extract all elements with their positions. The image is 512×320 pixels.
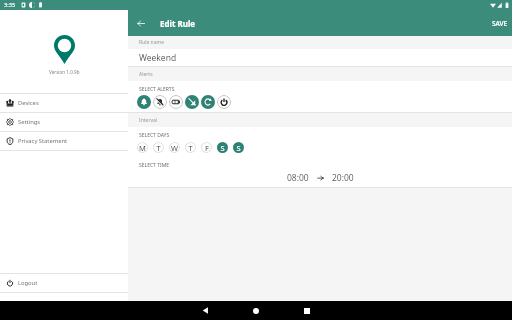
button[interactable]: Battery alert [169,95,183,109]
button[interactable]: Weekend [128,49,512,66]
staticText: S [236,143,241,153]
staticText: Privacy Statement [18,137,68,145]
staticText: 3:35 [4,1,16,9]
button[interactable]: Devices [0,94,128,112]
button[interactable]: Back [128,10,154,36]
button[interactable]: 08:00 [279,170,317,186]
staticText: W [171,143,178,153]
staticText: 08:00 [287,172,309,184]
staticText: M [139,143,146,153]
button[interactable]: Power alert [217,95,231,109]
button[interactable]: Connection alert [185,95,199,109]
button[interactable]: Home [241,301,271,320]
staticText: S [220,143,225,153]
staticText: F [205,143,209,153]
button[interactable]: Notification alert [137,95,151,109]
button[interactable]: SAVE [486,10,512,36]
staticText: Weekend [139,52,177,64]
staticText: T [156,143,161,153]
button[interactable]: 20:00 [324,170,362,186]
staticText: SELECT TIME [139,162,169,169]
staticText: Alerts [139,71,153,78]
button[interactable]: Vibration alert [153,95,167,109]
button[interactable]: M [137,142,148,153]
button[interactable]: S [217,142,228,153]
button[interactable]: Back [190,301,220,320]
button[interactable]: Recents [292,301,322,320]
staticText: Interval [139,117,158,124]
button[interactable]: T [185,142,196,153]
staticText: 20:00 [332,172,354,184]
staticText: SELECT ALERTS [139,86,175,93]
staticText: Edit Rule [160,18,196,29]
button[interactable]: S [233,142,244,153]
staticText: SELECT DAYS [139,132,170,139]
staticText: Logout [18,279,38,287]
button[interactable]: Settings [0,113,128,131]
button[interactable]: Sync alert [201,95,215,109]
button[interactable]: W [169,142,180,153]
staticText: SAVE [492,19,508,28]
staticText: Rule name [139,39,165,46]
staticText: Version 1.0.9b [49,69,80,75]
button[interactable]: T [153,142,164,153]
button[interactable]: F [201,142,212,153]
staticText: Devices [18,99,39,107]
staticText: T [188,143,193,153]
button[interactable]: Logout [0,274,128,292]
staticText: Settings [18,118,41,126]
button[interactable]: Privacy Statement [0,132,128,150]
